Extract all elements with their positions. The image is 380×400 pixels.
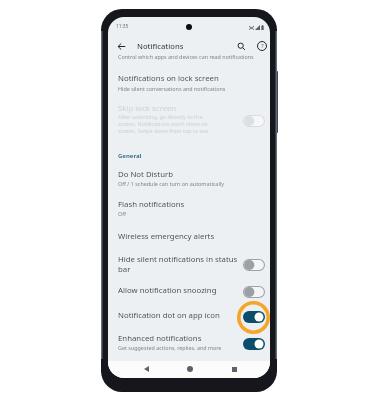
staticText: Wireless emergency alerts (118, 231, 215, 242)
button[interactable]: Off (243, 286, 265, 298)
staticText: Off (118, 210, 126, 217)
button[interactable]: Search (233, 38, 249, 54)
staticText: Do Not Disturb (118, 169, 174, 180)
button[interactable] (108, 102, 270, 142)
button[interactable] (108, 253, 270, 279)
staticText: General (118, 152, 142, 160)
button[interactable] (108, 198, 270, 224)
staticText: Notification dot on app icon (118, 310, 220, 321)
button[interactable]: Back (138, 361, 154, 377)
staticText: ? (261, 42, 264, 50)
staticText: bar (118, 264, 131, 275)
button[interactable]: Back (113, 38, 129, 54)
staticText: Notifications (137, 41, 184, 51)
button[interactable]: Off (243, 259, 265, 271)
staticText: Skip lock screen (118, 103, 177, 114)
button[interactable] (108, 168, 270, 194)
button[interactable] (108, 229, 270, 249)
button[interactable]: Home (182, 361, 198, 377)
button[interactable]: Help (254, 38, 270, 54)
button[interactable] (108, 70, 270, 98)
button[interactable]: Off (243, 115, 265, 127)
staticText: Flash notifications (118, 199, 185, 210)
staticText: Off / 1 schedule can turn on automatical… (118, 180, 224, 187)
staticText: screen. Notifications won't show on (118, 120, 208, 127)
staticText: After unlocking, go directly to the (118, 113, 203, 120)
staticText: 11:35 (116, 23, 129, 30)
button[interactable] (108, 283, 270, 303)
button[interactable] (108, 308, 270, 328)
staticText: Hide silent notifications in status (118, 254, 238, 265)
button[interactable]: On (243, 311, 265, 323)
button[interactable]: Recent apps (226, 361, 242, 377)
staticText: Control which apps and devices can read … (118, 53, 254, 60)
staticText: Hide silent conversations and notificati… (118, 85, 226, 92)
button[interactable] (108, 332, 270, 358)
staticText: Allow notification snoozing (118, 285, 217, 296)
staticText: Get suggested actions, replies, and more (118, 344, 222, 351)
staticText: screen. Swipe down from top to see (118, 127, 209, 134)
staticText: Notifications on lock screen (118, 73, 219, 84)
staticText: Enhanced notifications (118, 333, 202, 344)
button[interactable]: On (243, 338, 265, 350)
